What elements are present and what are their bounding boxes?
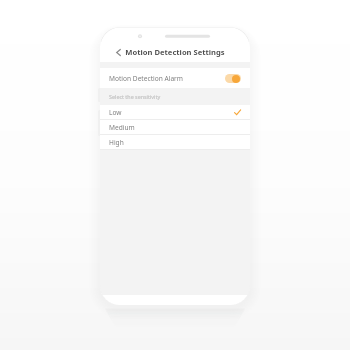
button[interactable]: High [100, 135, 250, 150]
staticText: Select the sensitivity [109, 93, 161, 100]
button[interactable]: Back [111, 45, 125, 59]
staticText: Low [109, 108, 234, 117]
button[interactable]: Motion Detection Alarm toggle, on [225, 74, 241, 83]
staticText: Motion Detection Settings [125, 47, 225, 57]
button[interactable]: Low [100, 105, 250, 120]
staticText: High [109, 138, 241, 147]
button[interactable]: Motion Detection Alarm [100, 68, 250, 88]
staticText: Medium [109, 123, 241, 132]
button[interactable]: Medium [100, 120, 250, 135]
staticText: Motion Detection Alarm [109, 74, 225, 83]
